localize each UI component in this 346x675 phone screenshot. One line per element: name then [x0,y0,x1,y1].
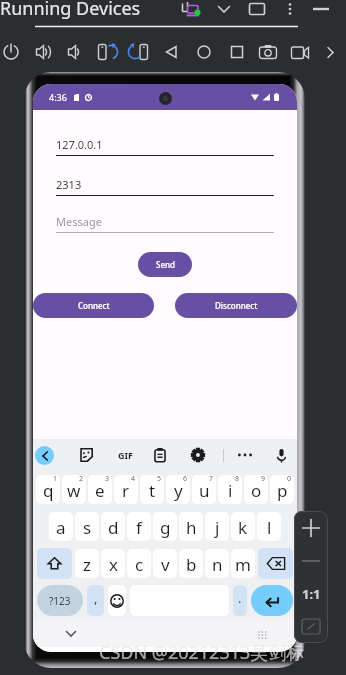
staticText: z [83,553,91,576]
staticText: x [109,553,118,576]
button[interactable]: Back [33,444,55,466]
button[interactable]: e [88,475,112,504]
button[interactable]: r [114,475,138,504]
staticText: 9 [261,475,266,484]
button[interactable]: h [179,512,203,541]
button[interactable]: Zoom in [294,511,328,544]
button[interactable]: Disconnect [175,293,297,318]
button[interactable]: Clipboard [149,444,171,466]
button[interactable]: GIF [114,444,136,466]
staticText: r [122,479,130,502]
button[interactable]: Home [191,41,217,63]
button[interactable]: 127.0.0.1 [56,137,274,156]
button[interactable]: w [62,475,86,504]
button[interactable]: m [231,549,255,578]
staticText: ?123 [49,594,71,608]
button[interactable]: i [218,475,242,504]
staticText: s [83,516,92,539]
button[interactable]: Comma [87,585,104,616]
button[interactable]: Connect [33,293,154,318]
button[interactable]: f [127,512,151,541]
staticText: 0 [287,475,292,484]
staticText: . [238,589,242,607]
staticText: f [136,516,142,539]
button[interactable]: y [166,475,190,504]
staticText: , [94,589,98,607]
button[interactable]: Collapse [213,2,235,20]
button[interactable]: More actions [318,41,344,63]
staticText: v [161,553,170,576]
staticText: e [95,479,105,502]
button[interactable]: Settings [187,444,209,466]
button[interactable]: p [270,475,294,504]
button[interactable]: Window mode [246,2,268,20]
button[interactable]: z [75,549,99,578]
staticText: i [228,479,233,502]
button[interactable]: a [49,512,73,541]
button[interactable]: Device manager [179,2,201,20]
button[interactable]: Zoom to fit [294,610,328,643]
button[interactable]: More options [279,2,301,20]
staticText: 4:36 [49,91,67,103]
button[interactable]: Power [0,41,24,63]
button[interactable]: k [231,512,255,541]
button[interactable]: Shift [37,548,72,579]
staticText: 127.0.0.1 [56,137,103,152]
staticText: GIF [118,449,133,461]
button[interactable]: Volume down [62,41,88,63]
button[interactable]: Backspace [258,548,293,579]
button[interactable]: b [179,549,203,578]
button[interactable]: v [153,549,177,578]
button[interactable]: j [205,512,229,541]
button[interactable]: u [192,475,216,504]
button[interactable]: Stickers [75,444,97,466]
button[interactable]: l [257,512,281,541]
staticText: CSDN @20212313吴剑标 [99,640,305,665]
button[interactable]: o [244,475,268,504]
button[interactable]: t [140,475,164,504]
staticText: Running Devices [0,0,141,21]
button[interactable]: Message [56,214,274,233]
button[interactable]: Rotate left [94,41,120,63]
button[interactable]: More [234,444,256,466]
button[interactable]: Volume up [30,41,56,63]
button[interactable]: Rotate right [126,41,152,63]
staticText: 1:1 [302,585,321,603]
button[interactable]: x [101,549,125,578]
button[interactable]: c [127,549,151,578]
button[interactable]: Voice input [270,444,292,466]
staticText: Disconnect [215,300,258,311]
staticText: l [267,516,272,539]
staticText: h [186,516,197,539]
staticText: 5 [157,475,162,484]
button[interactable]: Enter [251,585,293,616]
staticText: u [199,479,210,502]
staticText: q [43,479,54,502]
staticText: p [277,479,288,502]
button[interactable]: Take screenshot [255,41,281,63]
button[interactable]: q [36,475,60,504]
button[interactable]: Zoom out [294,544,328,577]
staticText: m [235,553,251,576]
button[interactable]: Record screen [287,41,313,63]
staticText: 6 [183,475,188,484]
button[interactable]: Send [138,252,192,277]
button[interactable]: Back [159,41,185,63]
button[interactable]: d [101,512,125,541]
staticText: g [160,516,171,539]
button[interactable]: Actual size [294,577,328,610]
button[interactable]: s [75,512,99,541]
staticText: 2 [79,475,84,484]
button[interactable]: Minimize [310,2,332,20]
button[interactable]: Symbols [37,585,83,616]
staticText: 7 [209,475,214,484]
staticText: Connect [78,300,110,311]
button[interactable]: n [205,549,229,578]
button[interactable]: Recent apps [224,41,250,63]
button[interactable]: Hide keyboard [59,621,83,645]
button[interactable]: g [153,512,177,541]
button[interactable]: 2313 [56,177,274,196]
button[interactable]: Period [233,585,247,616]
button[interactable]: Emoji [108,585,126,616]
